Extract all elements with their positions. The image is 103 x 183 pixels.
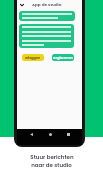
button[interactable]: Back: [27, 130, 35, 138]
staticText: App de studio: [32, 2, 62, 8]
button[interactable]: Inloggen: [22, 54, 44, 61]
button[interactable]: Collapse: [17, 0, 26, 9]
staticText: Stuur berichten: [30, 153, 74, 161]
button[interactable]: Home: [46, 130, 54, 138]
button[interactable]: Registreren: [52, 54, 74, 61]
staticText: Inloggen: [25, 55, 41, 60]
staticText: naar de studio: [31, 161, 72, 169]
staticText: Registreren: [53, 55, 73, 60]
button[interactable]: Recent apps: [64, 130, 72, 138]
